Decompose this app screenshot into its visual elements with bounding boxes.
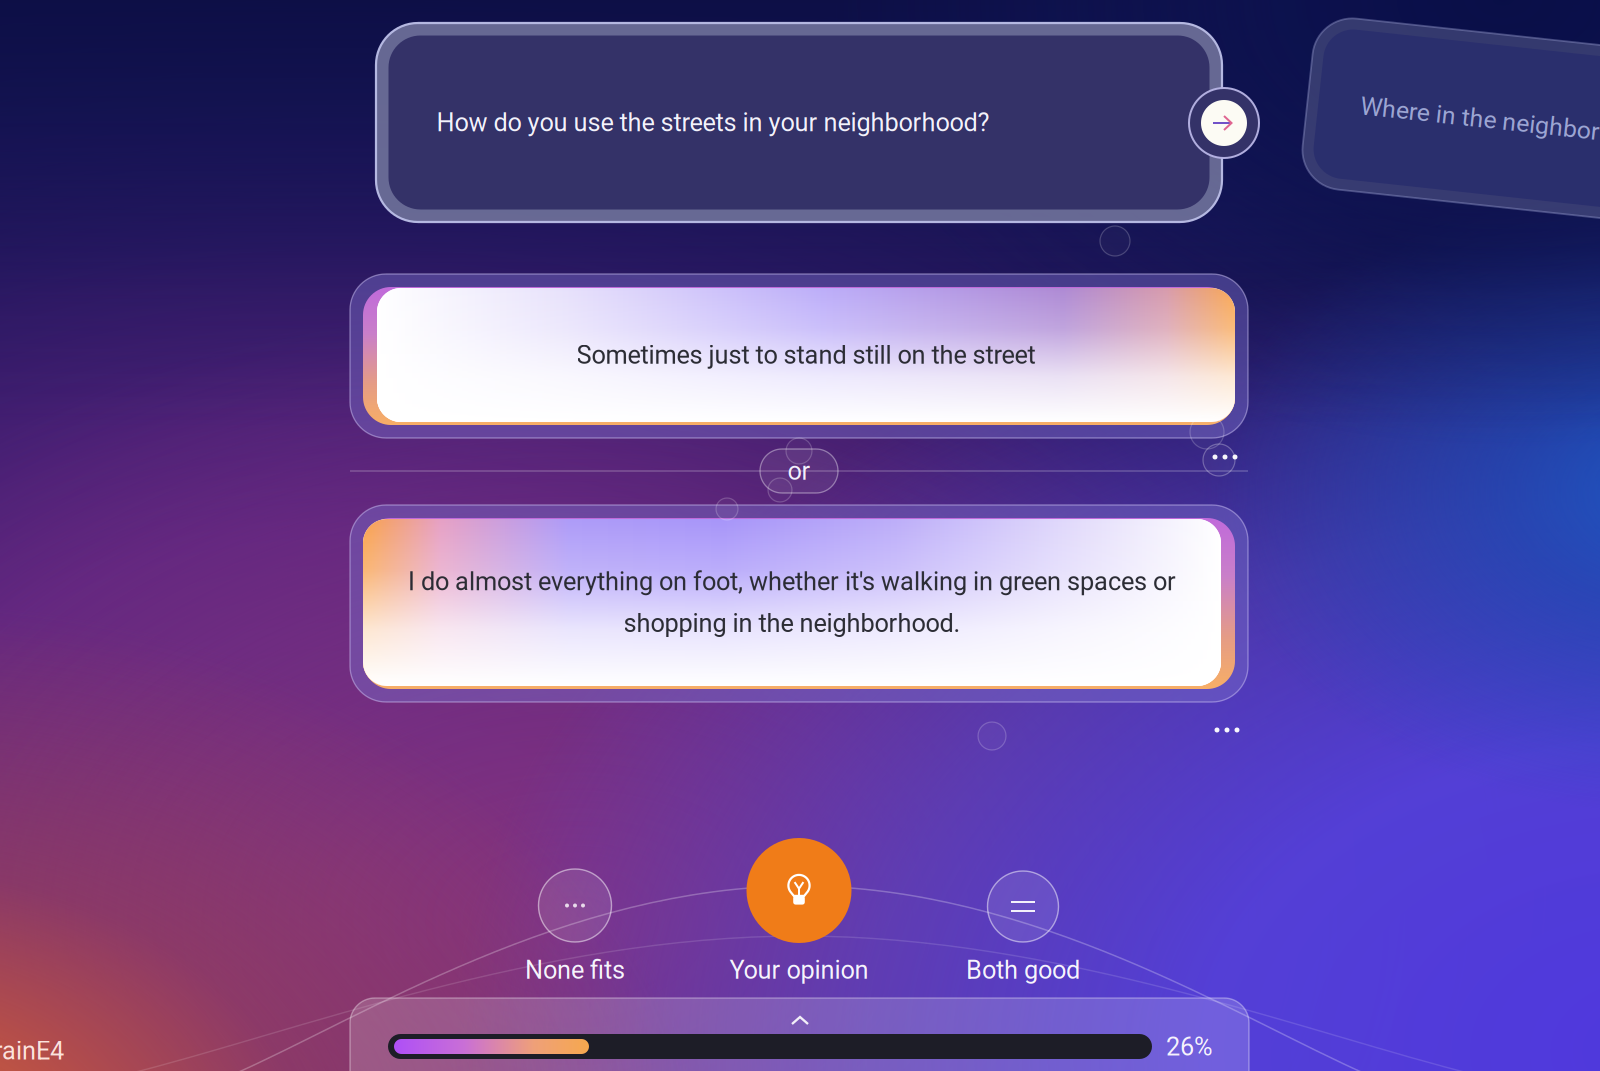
button[interactable]: Sometimes just to stand still on the str… <box>350 274 1248 438</box>
staticText: shopping in the neighborhood. <box>623 608 960 638</box>
button[interactable]: More options <box>1204 710 1250 750</box>
staticText: How do you use the streets in your neigh… <box>436 108 989 137</box>
button[interactable]: More options <box>1196 440 1242 480</box>
staticText: Where in the neighborhood do <box>1359 115 1600 145</box>
button[interactable]: Next question <box>1188 87 1260 159</box>
staticText: Both good <box>966 955 1080 985</box>
button[interactable]: Your opinion <box>689 838 909 988</box>
staticText: Sometimes just to stand still on the str… <box>576 340 1035 370</box>
staticText: rainE4 <box>0 1036 64 1066</box>
staticText: None fits <box>525 955 625 985</box>
staticText: I do almost everything on foot, whether … <box>408 567 1176 596</box>
staticText: or <box>787 456 810 486</box>
button[interactable]: I do almost everything on foot, whether … <box>350 505 1248 702</box>
button[interactable]: None fits <box>465 869 685 1019</box>
button[interactable]: How do you use the streets in your neigh… <box>376 23 1296 223</box>
button[interactable]: Expand panel <box>770 1008 830 1036</box>
button[interactable]: Both good <box>913 871 1133 1021</box>
staticText: 26% <box>1166 1032 1213 1062</box>
staticText: Your opinion <box>729 955 868 985</box>
